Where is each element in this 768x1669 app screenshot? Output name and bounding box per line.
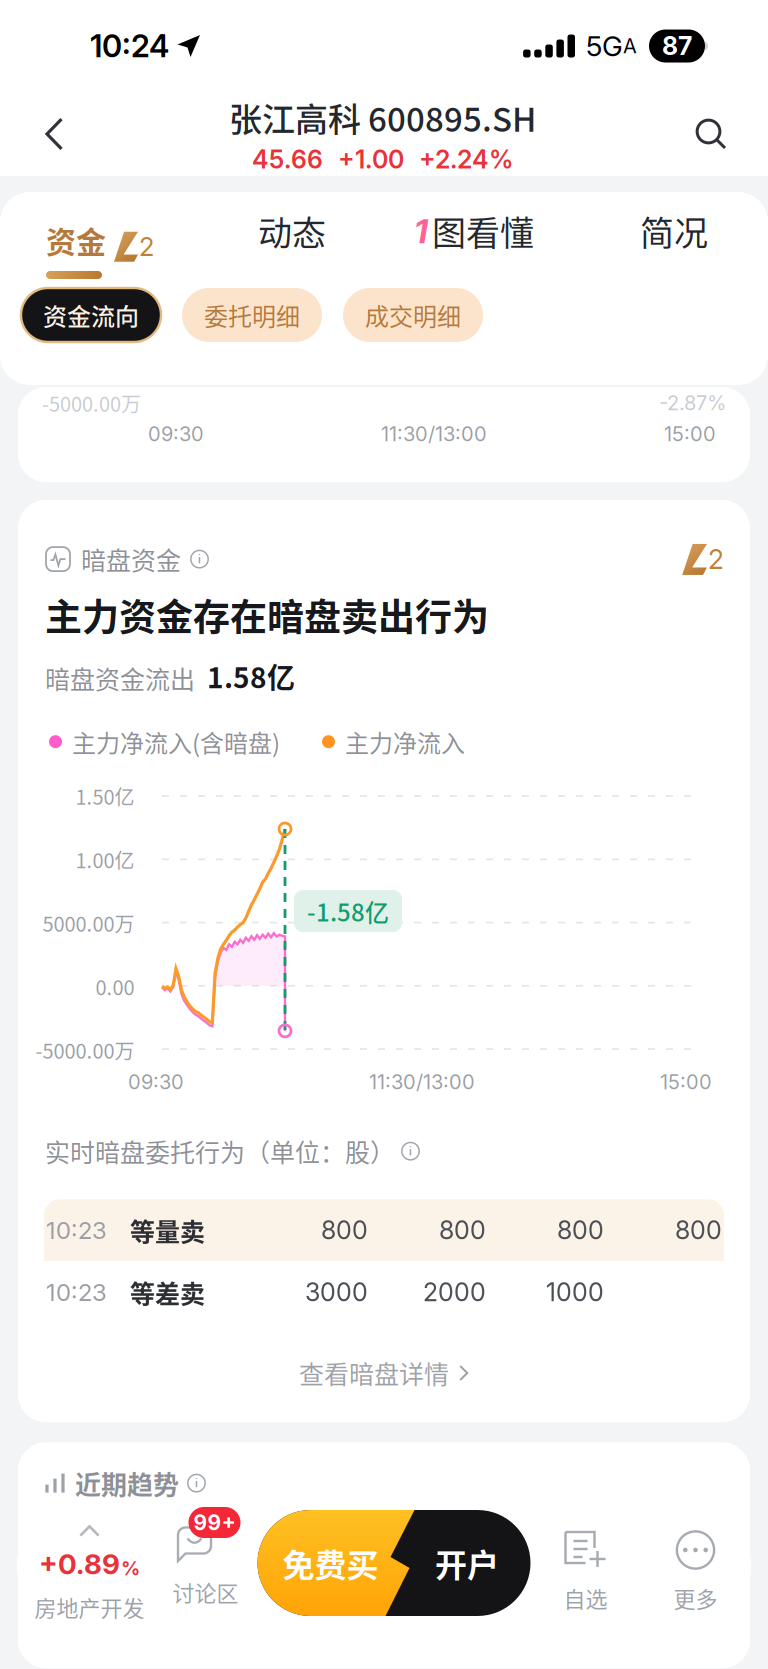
staticText: 近期趋势 (75, 1464, 179, 1502)
staticText: 11:30/13:00 (381, 422, 487, 446)
staticText: 99+ (193, 1510, 235, 1535)
staticText: 更多 (673, 1582, 717, 1614)
button[interactable]: 动态 (162, 183, 384, 297)
staticText: -2.87% (659, 391, 726, 415)
staticText: 等差卖 (130, 1274, 205, 1310)
staticText: 主力净流入(含暗盘) (72, 724, 280, 759)
staticText: 1.50亿 (75, 782, 134, 811)
staticText: 15:00 (664, 422, 716, 446)
staticText: 主力净流入 (345, 724, 465, 759)
staticText: 1.58亿 (207, 656, 295, 696)
button[interactable]: 简况 (610, 183, 768, 297)
button[interactable]: 1 (384, 183, 610, 297)
staticText: -5000.00万 (42, 388, 141, 417)
staticText: A (623, 34, 637, 58)
staticText: % (121, 1557, 140, 1580)
staticText: -5000.00万 (35, 1036, 134, 1065)
staticText: +0.89 (39, 1547, 120, 1581)
staticText: +1.00 (338, 144, 404, 174)
button[interactable]: Search (674, 92, 748, 176)
staticText: 主力资金存在暗盘卖出行为 (45, 588, 489, 642)
button[interactable]: 免费买 (257, 1510, 530, 1616)
staticText: 2000 (423, 1277, 486, 1307)
staticText: 800 (557, 1215, 604, 1245)
staticText: 1000 (546, 1277, 604, 1307)
staticText: 房地产开发 (34, 1591, 144, 1623)
staticText: -1.58亿 (307, 894, 389, 928)
staticText: 等量卖 (130, 1212, 205, 1248)
staticText: 免费买 (282, 1540, 378, 1586)
staticText: 10:23 (46, 1216, 107, 1245)
button[interactable]: 成交明细 (343, 288, 483, 342)
staticText: 暗盘资金流出 (45, 660, 195, 696)
staticText: 资金 (46, 218, 106, 262)
staticText: 查看暗盘详情 (299, 1355, 449, 1391)
staticText: 5G (586, 29, 623, 63)
staticText: 图看懂 (432, 206, 534, 256)
staticText: 5000.00万 (42, 909, 134, 938)
staticText: 87 (662, 31, 692, 61)
staticText: 成交明细 (365, 298, 461, 332)
staticText: 800 (675, 1215, 722, 1245)
staticText: 1.00亿 (75, 845, 134, 874)
staticText: 10:23 (46, 1278, 107, 1307)
button[interactable]: 资金流向 (21, 288, 161, 342)
staticText: 资金流向 (43, 298, 139, 332)
staticText: 09:30 (128, 1070, 184, 1094)
button[interactable]: 更多 (640, 1504, 750, 1627)
staticText: 0.00 (95, 972, 134, 1001)
staticText: 2 (708, 543, 724, 576)
staticText: 800 (321, 1215, 368, 1245)
staticText: 1 (414, 210, 428, 251)
staticText: 800 (439, 1215, 486, 1245)
button[interactable]: Back (17, 92, 91, 176)
staticText: 3000 (305, 1277, 368, 1307)
staticText: 2 (139, 231, 154, 262)
staticText: 实时暗盘委托行为（单位：股） (45, 1133, 395, 1169)
staticText: 开户 (435, 1540, 499, 1586)
staticText: 15:00 (660, 1070, 712, 1094)
staticText: +2.24% (419, 144, 513, 174)
button[interactable]: 资金 (0, 192, 162, 288)
button[interactable]: 查看暗盘详情 (18, 1323, 750, 1422)
staticText: 张江高科 600895.SH (229, 93, 536, 141)
button[interactable]: +0.89 (19, 1504, 159, 1627)
staticText: 动态 (258, 206, 326, 256)
staticText: 45.66 (252, 144, 323, 174)
staticText: 10:24 (90, 27, 169, 65)
staticText: 自选 (563, 1582, 607, 1614)
staticText: 委托明细 (204, 298, 300, 332)
staticText: 简况 (640, 206, 708, 256)
button[interactable]: 99+ (159, 1504, 251, 1627)
staticText: 暗盘资金 (81, 541, 181, 577)
button[interactable]: 委托明细 (182, 288, 322, 342)
button[interactable]: 自选 (530, 1504, 640, 1627)
staticText: 09:30 (148, 422, 204, 446)
staticText: 讨论区 (172, 1576, 238, 1608)
staticText: 11:30/13:00 (369, 1070, 475, 1094)
